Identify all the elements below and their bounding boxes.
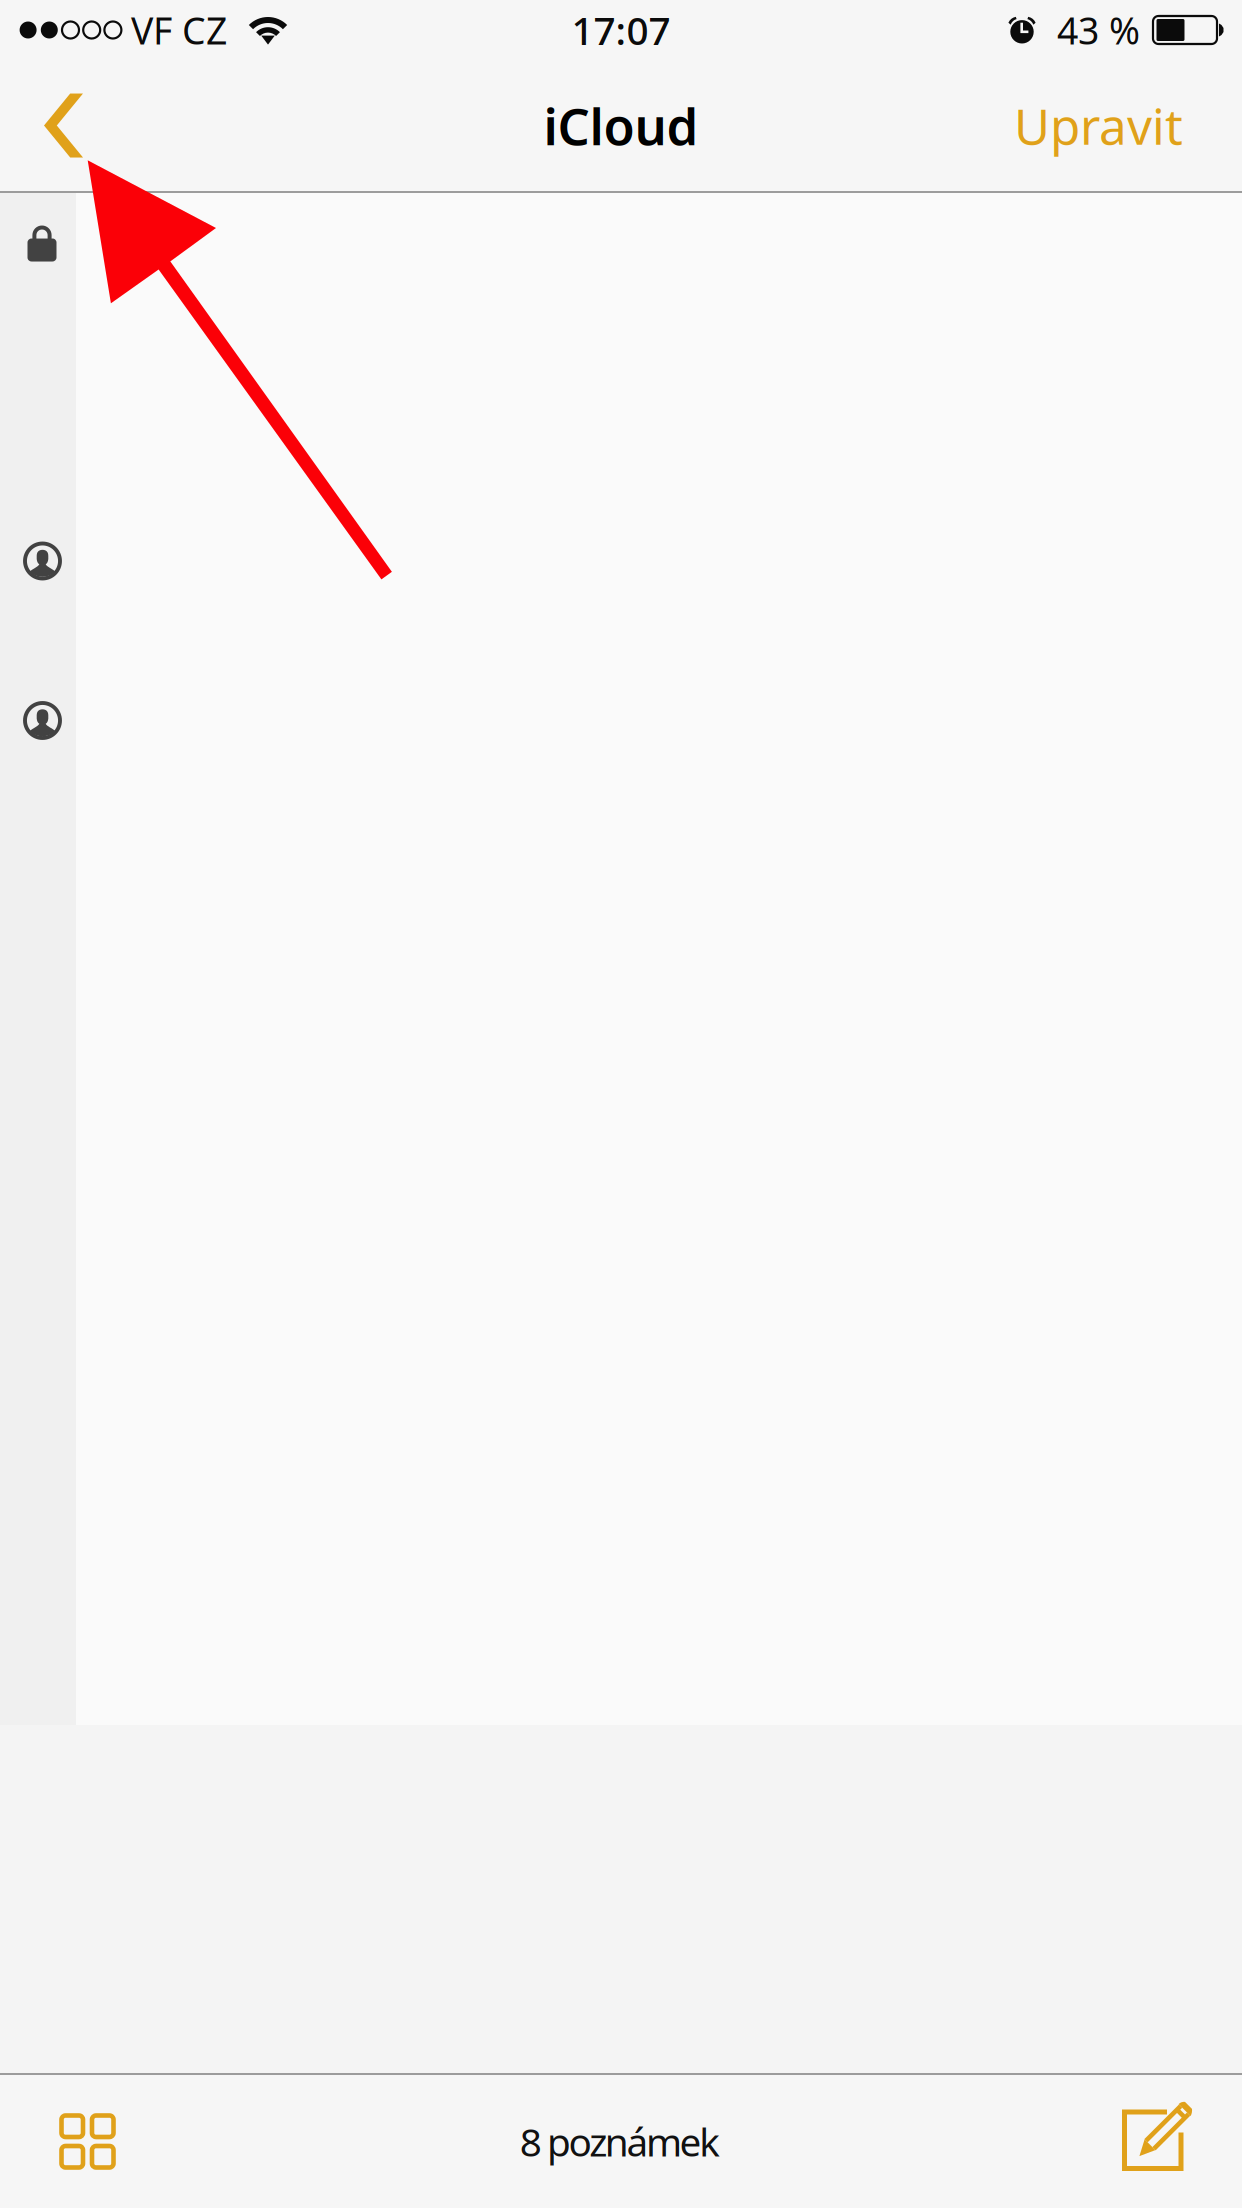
staticText: 17:07 (571, 4, 670, 56)
button[interactable]: Upravit (984, 71, 1242, 180)
staticText: 43 % (1057, 5, 1140, 55)
button[interactable]: Locked note (0, 225, 76, 261)
button[interactable]: Gallery view (0, 2076, 156, 2207)
staticText: 8 poznámek (520, 2116, 720, 2167)
button[interactable]: Shared note (0, 543, 76, 579)
button[interactable]: New note (1084, 2072, 1242, 2208)
button[interactable]: Back (0, 71, 113, 179)
staticText: iCloud (543, 92, 698, 159)
staticText: Upravit (1014, 93, 1183, 158)
button[interactable]: Shared note (0, 702, 76, 738)
staticText: VF CZ (131, 5, 227, 55)
